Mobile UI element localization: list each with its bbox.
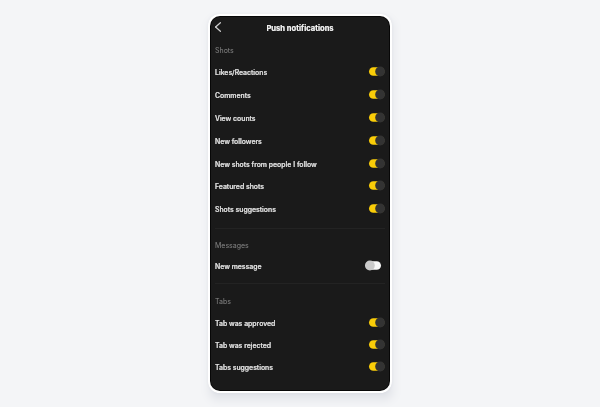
staticText: Shots [215,46,234,54]
staticText: Shots suggestions [215,205,369,213]
staticText: New message [215,262,369,270]
staticText: View counts [215,114,369,122]
button[interactable]: Comments [211,83,389,106]
staticText: Push notifications [266,24,334,33]
staticText: New shots from people I follow [215,160,369,168]
button[interactable]: Tabs suggestions [211,355,389,378]
button[interactable]: Back [211,20,224,33]
button[interactable]: Shots suggestions [211,197,389,220]
staticText: Tab was rejected [215,341,369,349]
staticText: New followers [215,137,369,145]
button[interactable]: New followers [211,129,389,152]
button[interactable]: New message [211,254,389,277]
button[interactable]: Likes/Reactions [211,60,389,83]
staticText: Tabs [215,297,231,305]
staticText: Tab was approved [215,319,369,327]
staticText: Messages [215,241,249,249]
button[interactable]: View counts [211,106,389,129]
button[interactable]: Featured shots [211,174,389,197]
staticText: Comments [215,91,369,99]
staticText: Featured shots [215,182,369,190]
button[interactable]: New shots from people I follow [211,152,389,175]
staticText: Tabs suggestions [215,363,369,371]
staticText: Likes/Reactions [215,68,369,76]
button[interactable]: Tab was rejected [211,333,389,356]
button[interactable]: Tab was approved [211,311,389,334]
